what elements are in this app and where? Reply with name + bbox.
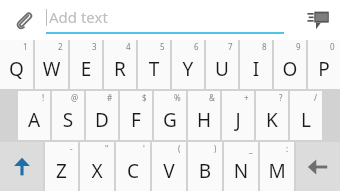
- button[interactable]: (: [152, 142, 186, 191]
- staticText: C: [116, 158, 150, 184]
- staticText: 9: [296, 41, 301, 52]
- button[interactable]: @: [52, 91, 84, 140]
- staticText: $: [142, 92, 147, 103]
- staticText: N: [224, 158, 258, 184]
- staticText: X: [80, 158, 114, 184]
- staticText: 3: [92, 41, 97, 52]
- button[interactable]: 6: [172, 40, 204, 89]
- button[interactable]: Add text: [46, 7, 284, 34]
- button[interactable]: &: [188, 91, 220, 140]
- staticText: !: [42, 92, 45, 103]
- staticText: /: [314, 92, 317, 103]
- staticText: R: [104, 56, 136, 82]
- staticText: #: [107, 92, 113, 103]
- button[interactable]: %: [154, 91, 186, 140]
- staticText: &: [209, 92, 215, 103]
- button[interactable]: $: [120, 91, 152, 140]
- staticText: F: [120, 107, 152, 133]
- staticText: U: [206, 56, 238, 82]
- staticText: H: [188, 107, 220, 133]
- button[interactable]: :: [260, 142, 294, 191]
- button[interactable]: ): [188, 142, 222, 191]
- button[interactable]: 3: [70, 40, 102, 89]
- staticText: ): [214, 143, 217, 154]
- staticText: G: [154, 107, 186, 133]
- staticText: %: [174, 92, 181, 103]
- staticText: Q: [0, 56, 33, 82]
- staticText: K: [256, 107, 288, 133]
- staticText: ?: [279, 92, 283, 103]
- button[interactable]: ?: [256, 91, 288, 140]
- button[interactable]: Send message: [302, 4, 334, 36]
- staticText: 7: [228, 41, 233, 52]
- staticText: 6: [194, 41, 199, 52]
- staticText: 5: [160, 41, 165, 52]
- button[interactable]: ": [80, 142, 114, 191]
- staticText: P: [308, 56, 340, 82]
- staticText: _: [249, 143, 253, 154]
- button[interactable]: 0: [308, 40, 340, 89]
- staticText: Add text: [49, 7, 108, 27]
- button[interactable]: /: [290, 91, 322, 140]
- staticText: -: [70, 143, 73, 154]
- staticText: A: [18, 107, 50, 133]
- button[interactable]: !: [18, 91, 50, 140]
- button[interactable]: 4: [104, 40, 136, 89]
- button[interactable]: 2: [35, 40, 68, 89]
- staticText: (: [178, 143, 181, 154]
- button[interactable]: 5: [138, 40, 170, 89]
- button[interactable]: Shift: [0, 142, 43, 191]
- button[interactable]: #: [86, 91, 118, 140]
- staticText: O: [274, 56, 306, 82]
- staticText: :: [286, 143, 289, 154]
- staticText: E: [70, 56, 102, 82]
- button[interactable]: 7: [206, 40, 238, 89]
- staticText: I: [240, 56, 272, 82]
- staticText: 1: [23, 41, 28, 52]
- button[interactable]: Backspace: [296, 142, 340, 191]
- staticText: ": [105, 143, 109, 154]
- button[interactable]: 8: [240, 40, 272, 89]
- staticText: Y: [172, 56, 204, 82]
- staticText: B: [188, 158, 222, 184]
- button[interactable]: Attach: [10, 6, 38, 34]
- staticText: V: [152, 158, 186, 184]
- button[interactable]: _: [224, 142, 258, 191]
- button[interactable]: ': [116, 142, 150, 191]
- staticText: +: [244, 92, 249, 103]
- staticText: T: [138, 56, 170, 82]
- staticText: 8: [262, 41, 267, 52]
- staticText: L: [290, 107, 322, 133]
- button[interactable]: +: [222, 91, 254, 140]
- staticText: S: [52, 107, 84, 133]
- staticText: W: [35, 56, 68, 82]
- staticText: D: [86, 107, 118, 133]
- staticText: 4: [126, 41, 131, 52]
- button[interactable]: 1: [0, 40, 33, 89]
- staticText: @: [71, 92, 79, 103]
- staticText: 2: [58, 41, 63, 52]
- staticText: M: [260, 158, 294, 184]
- staticText: 0: [330, 41, 335, 52]
- staticText: J: [222, 107, 254, 133]
- button[interactable]: 9: [274, 40, 306, 89]
- button[interactable]: -: [45, 142, 78, 191]
- staticText: Z: [45, 158, 78, 184]
- staticText: ': [143, 143, 145, 154]
